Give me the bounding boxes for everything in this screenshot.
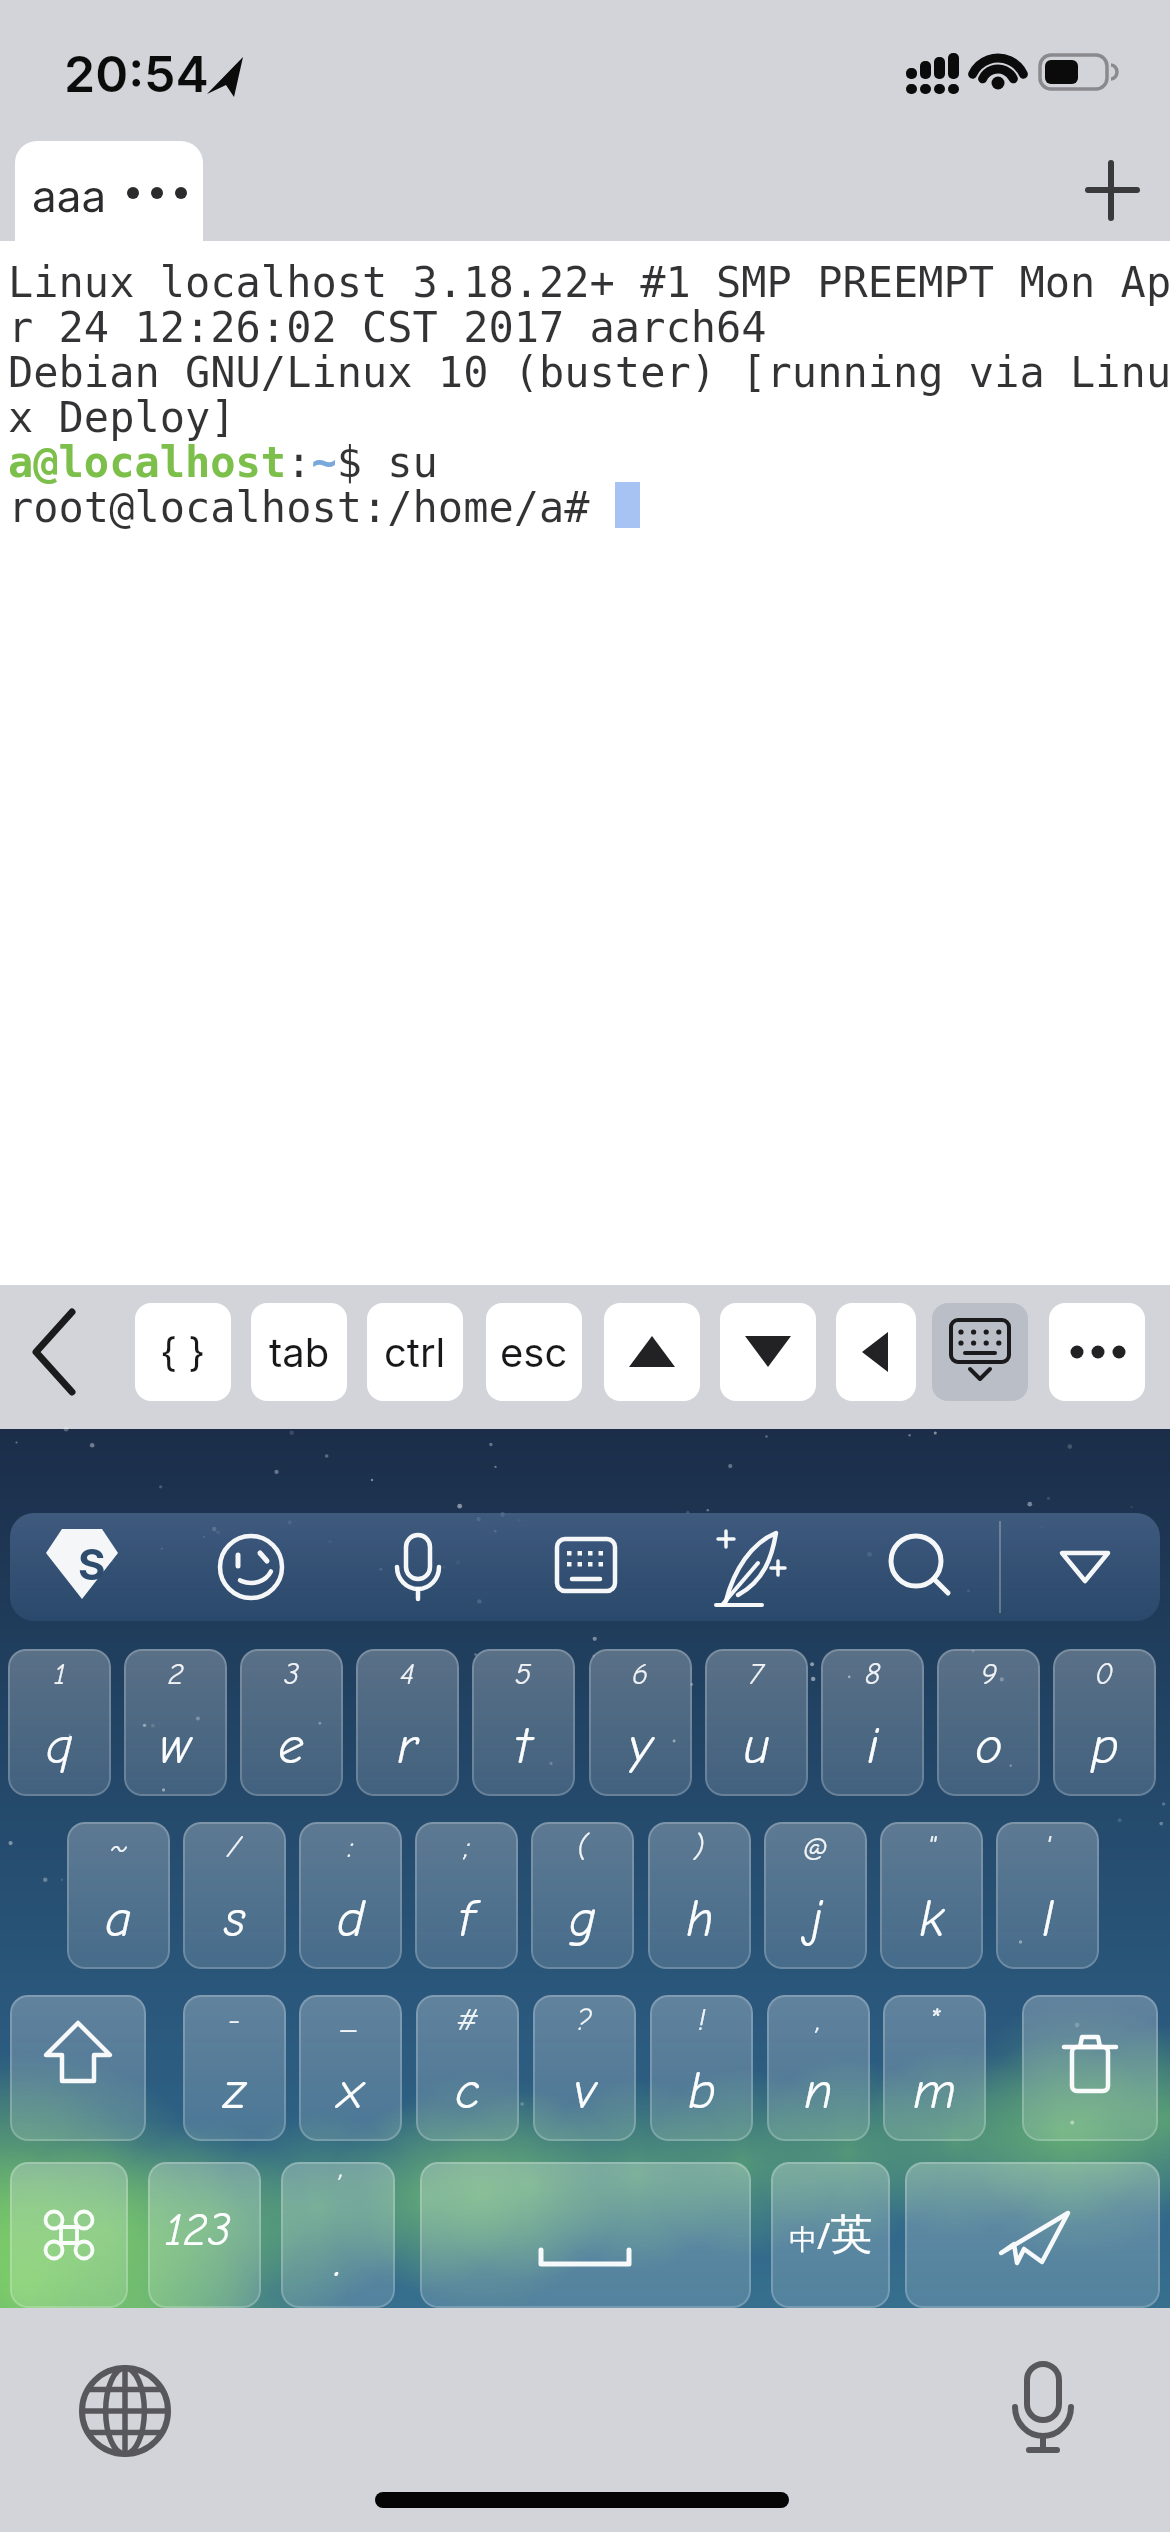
button[interactable]: *	[883, 1995, 986, 2141]
staticText: 中/英	[789, 2209, 873, 2262]
staticText: )	[694, 1830, 705, 1865]
button[interactable]	[836, 1303, 916, 1401]
staticText: _	[341, 2003, 360, 2038]
staticText: ;	[464, 1830, 470, 1865]
button[interactable]: ~	[67, 1822, 170, 1969]
staticText: 1	[54, 1657, 66, 1692]
button[interactable]	[10, 1995, 146, 2141]
staticText: -	[228, 2003, 241, 2038]
button[interactable]	[720, 1303, 816, 1401]
staticText: g	[569, 1889, 597, 1949]
button[interactable]: 0	[1053, 1649, 1156, 1796]
staticText: c	[455, 2061, 481, 2121]
staticText: o	[975, 1716, 1003, 1776]
button[interactable]	[1022, 1995, 1158, 2141]
button[interactable]: @	[764, 1822, 867, 1969]
button[interactable]: "	[880, 1822, 983, 1969]
staticText: ~	[110, 1830, 128, 1865]
staticText: (	[577, 1830, 588, 1865]
button[interactable]: :	[299, 1822, 402, 1969]
staticText: b	[688, 2061, 716, 2121]
staticText: k	[919, 1889, 945, 1949]
staticText: w	[160, 1716, 191, 1776]
button[interactable]: #	[416, 1995, 519, 2141]
staticText: x Deploy]	[8, 393, 236, 442]
staticText: x	[338, 2061, 363, 2121]
staticText: ’	[335, 2170, 341, 2205]
button[interactable]: aaa	[15, 141, 203, 241]
button[interactable]: ,	[767, 1995, 870, 2141]
button[interactable]: /	[183, 1822, 286, 1969]
button[interactable]: esc	[486, 1303, 582, 1401]
button[interactable]: ;	[415, 1822, 518, 1969]
staticText: l	[1042, 1889, 1054, 1949]
staticText: !	[698, 2003, 706, 2038]
staticText: 20:54	[64, 44, 209, 104]
button[interactable]: '	[996, 1822, 1099, 1969]
staticText: #	[456, 2003, 479, 2038]
button[interactable]: 6	[589, 1649, 692, 1796]
staticText: Debian GNU/Linux 10 (buster) [running vi…	[8, 348, 1170, 397]
button[interactable]: 3	[240, 1649, 343, 1796]
button[interactable]	[604, 1303, 700, 1401]
button[interactable]: 8	[821, 1649, 924, 1796]
staticText: j	[809, 1889, 823, 1949]
staticText: 3	[284, 1657, 300, 1692]
button[interactable]	[932, 1303, 1028, 1401]
staticText: tab	[269, 1328, 330, 1376]
button[interactable]: 7	[705, 1649, 808, 1796]
staticText: h	[686, 1889, 714, 1949]
staticText: *	[929, 2003, 941, 2038]
button[interactable]: (	[531, 1822, 634, 1969]
staticText: a	[105, 1889, 132, 1949]
button[interactable]: ctrl	[367, 1303, 463, 1401]
staticText: s	[224, 1889, 246, 1949]
staticText: d	[337, 1889, 365, 1949]
staticText: e	[278, 1716, 305, 1776]
button[interactable]	[1049, 1303, 1145, 1401]
staticText: S	[78, 1539, 106, 1590]
staticText: 5	[515, 1657, 532, 1692]
button[interactable]	[70, 2356, 180, 2466]
button[interactable]: -	[183, 1995, 286, 2141]
button[interactable]: 9	[937, 1649, 1040, 1796]
button[interactable]: _	[299, 1995, 402, 2141]
staticText: ctrl	[384, 1328, 446, 1376]
staticText: 6	[632, 1657, 649, 1692]
staticText: t	[515, 1716, 532, 1776]
button[interactable]: tab	[251, 1303, 347, 1401]
staticText: ?	[577, 2003, 592, 2038]
staticText: 123	[165, 2204, 231, 2257]
button[interactable]	[1080, 158, 1142, 222]
staticText: u	[743, 1716, 771, 1776]
button[interactable]: { }	[135, 1303, 231, 1401]
staticText: aaa	[32, 169, 107, 222]
staticText: v	[574, 2061, 596, 2121]
button[interactable]: 5	[472, 1649, 575, 1796]
staticText: i	[867, 1716, 879, 1776]
button[interactable]: 1	[8, 1649, 111, 1796]
button[interactable]: !	[650, 1995, 753, 2141]
staticText: r	[397, 1716, 418, 1776]
button[interactable]: S	[10, 1513, 1160, 1621]
button[interactable]	[995, 2352, 1091, 2468]
staticText: @	[803, 1830, 828, 1865]
button[interactable]	[771, 2162, 890, 2308]
button[interactable]	[420, 2162, 751, 2308]
button[interactable]: ’	[281, 2162, 395, 2308]
staticText: a@localhost:~$ su	[8, 438, 438, 487]
button[interactable]: 4	[356, 1649, 459, 1796]
staticText: q	[46, 1716, 74, 1776]
staticText: 9	[981, 1657, 997, 1692]
staticText: f	[459, 1889, 475, 1949]
staticText: z	[224, 2061, 246, 2121]
button[interactable]: 2	[124, 1649, 227, 1796]
button[interactable]	[10, 2162, 128, 2308]
button[interactable]	[20, 1300, 90, 1404]
button[interactable]: )	[648, 1822, 751, 1969]
staticText: { }	[160, 1328, 206, 1376]
button[interactable]	[905, 2162, 1160, 2308]
staticText: r 24 12:26:02 CST 2017 aarch64	[8, 303, 767, 352]
button[interactable]	[148, 2162, 261, 2308]
button[interactable]: ?	[533, 1995, 636, 2141]
